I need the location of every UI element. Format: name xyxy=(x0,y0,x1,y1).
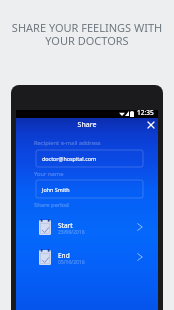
staticText: YOUR DOCTORS xyxy=(0,33,174,48)
button[interactable] xyxy=(16,246,158,276)
staticText: 05/10/2016 xyxy=(58,259,85,266)
staticText: John Smith xyxy=(42,186,70,193)
staticText: 23/09/2016 xyxy=(58,229,85,236)
staticText: End xyxy=(58,251,70,260)
staticText: SHARE YOUR FEELINGS WITH xyxy=(0,20,174,35)
staticText: Start xyxy=(58,221,73,230)
button[interactable]: Close xyxy=(145,119,157,131)
staticText: Share xyxy=(16,120,158,130)
staticText: doctor@hospital.com xyxy=(42,155,97,162)
staticText: 12:35 xyxy=(137,108,154,117)
button[interactable] xyxy=(36,180,143,198)
button[interactable] xyxy=(16,216,158,246)
staticText: Share period xyxy=(34,201,69,209)
staticText: Your name xyxy=(34,170,64,178)
staticText: Recipient e-mail address xyxy=(34,139,101,147)
button[interactable] xyxy=(36,150,143,167)
